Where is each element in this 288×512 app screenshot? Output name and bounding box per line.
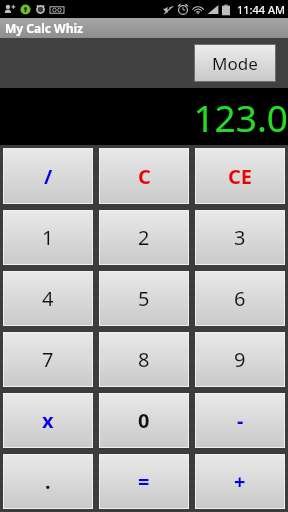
- staticText: My Calc Whiz: [5, 20, 83, 36]
- staticText: 5: [138, 285, 150, 312]
- button[interactable]: 1: [3, 210, 93, 265]
- staticText: .: [45, 468, 51, 495]
- staticText: 123.0: [193, 92, 288, 142]
- button[interactable]: 7: [3, 332, 93, 387]
- staticText: 4: [42, 285, 54, 312]
- button[interactable]: x: [3, 393, 93, 448]
- staticText: 7: [42, 346, 54, 373]
- staticText: 1: [42, 224, 54, 251]
- button[interactable]: 3: [195, 210, 285, 265]
- staticText: -: [237, 407, 244, 434]
- button[interactable]: 2: [99, 210, 189, 265]
- staticText: C: [138, 163, 151, 190]
- button[interactable]: -: [195, 393, 285, 448]
- button[interactable]: 0: [99, 393, 189, 448]
- staticText: 6: [234, 285, 246, 312]
- staticText: Mode: [212, 52, 258, 75]
- button[interactable]: /: [3, 148, 93, 204]
- button[interactable]: 4: [3, 271, 93, 326]
- staticText: /: [44, 163, 53, 190]
- staticText: 8: [138, 346, 150, 373]
- staticText: +: [234, 468, 246, 495]
- button[interactable]: CE: [195, 148, 285, 204]
- button[interactable]: 9: [195, 332, 285, 387]
- staticText: CE: [228, 163, 253, 190]
- staticText: 9: [234, 346, 246, 373]
- staticText: 2: [138, 224, 150, 251]
- staticText: x: [42, 407, 54, 434]
- button[interactable]: C: [99, 148, 189, 204]
- staticText: 0: [138, 407, 150, 434]
- staticText: =: [138, 468, 150, 495]
- button[interactable]: .: [3, 454, 93, 509]
- button[interactable]: Mode: [194, 44, 276, 82]
- staticText: 3: [234, 224, 246, 251]
- button[interactable]: 5: [99, 271, 189, 326]
- button[interactable]: 6: [195, 271, 285, 326]
- staticText: 11:44 AM: [237, 2, 285, 17]
- button[interactable]: 8: [99, 332, 189, 387]
- button[interactable]: =: [99, 454, 189, 509]
- button[interactable]: +: [195, 454, 285, 509]
